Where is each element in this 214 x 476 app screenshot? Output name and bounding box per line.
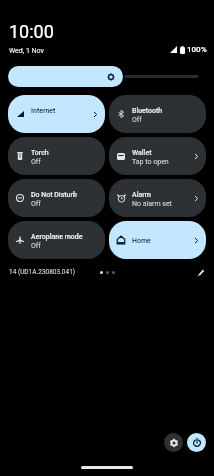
button[interactable]: Brightness [8,66,123,87]
staticText: Do Not Disturb [31,191,77,199]
staticText: Off [31,158,41,166]
button[interactable]: Internet [8,95,105,133]
button[interactable]: Settings [164,433,183,452]
staticText: Off [132,116,142,124]
staticText: Wallet [132,149,152,157]
button[interactable]: Wallet [109,137,206,175]
staticText: Home [132,237,151,245]
button[interactable]: Alarm [109,179,206,217]
staticText: 10:00 [9,21,54,42]
staticText: Aeroplane mode [31,233,83,241]
staticText: No alarm set [132,200,172,208]
staticText: Torch [31,149,49,157]
staticText: 14 (UD1A.230803.041) [9,268,76,276]
button[interactable]: Torch [8,137,105,175]
staticText: Wed, 1 Nov [9,47,44,55]
staticText: Tap to open [132,158,169,166]
staticText: Off [31,200,41,208]
button[interactable]: Edit tiles [194,265,208,279]
staticText: Internet [31,107,56,115]
staticText: Bluetooth [132,107,163,115]
button[interactable]: Do Not Disturb [8,179,105,217]
staticText: Off [31,242,41,250]
staticText: Alarm [132,191,151,199]
button[interactable]: Aeroplane mode [8,221,105,259]
button[interactable]: Home [109,221,206,259]
button[interactable]: Bluetooth [109,95,206,133]
staticText: 100% [187,45,207,54]
button[interactable]: Power [187,433,206,452]
